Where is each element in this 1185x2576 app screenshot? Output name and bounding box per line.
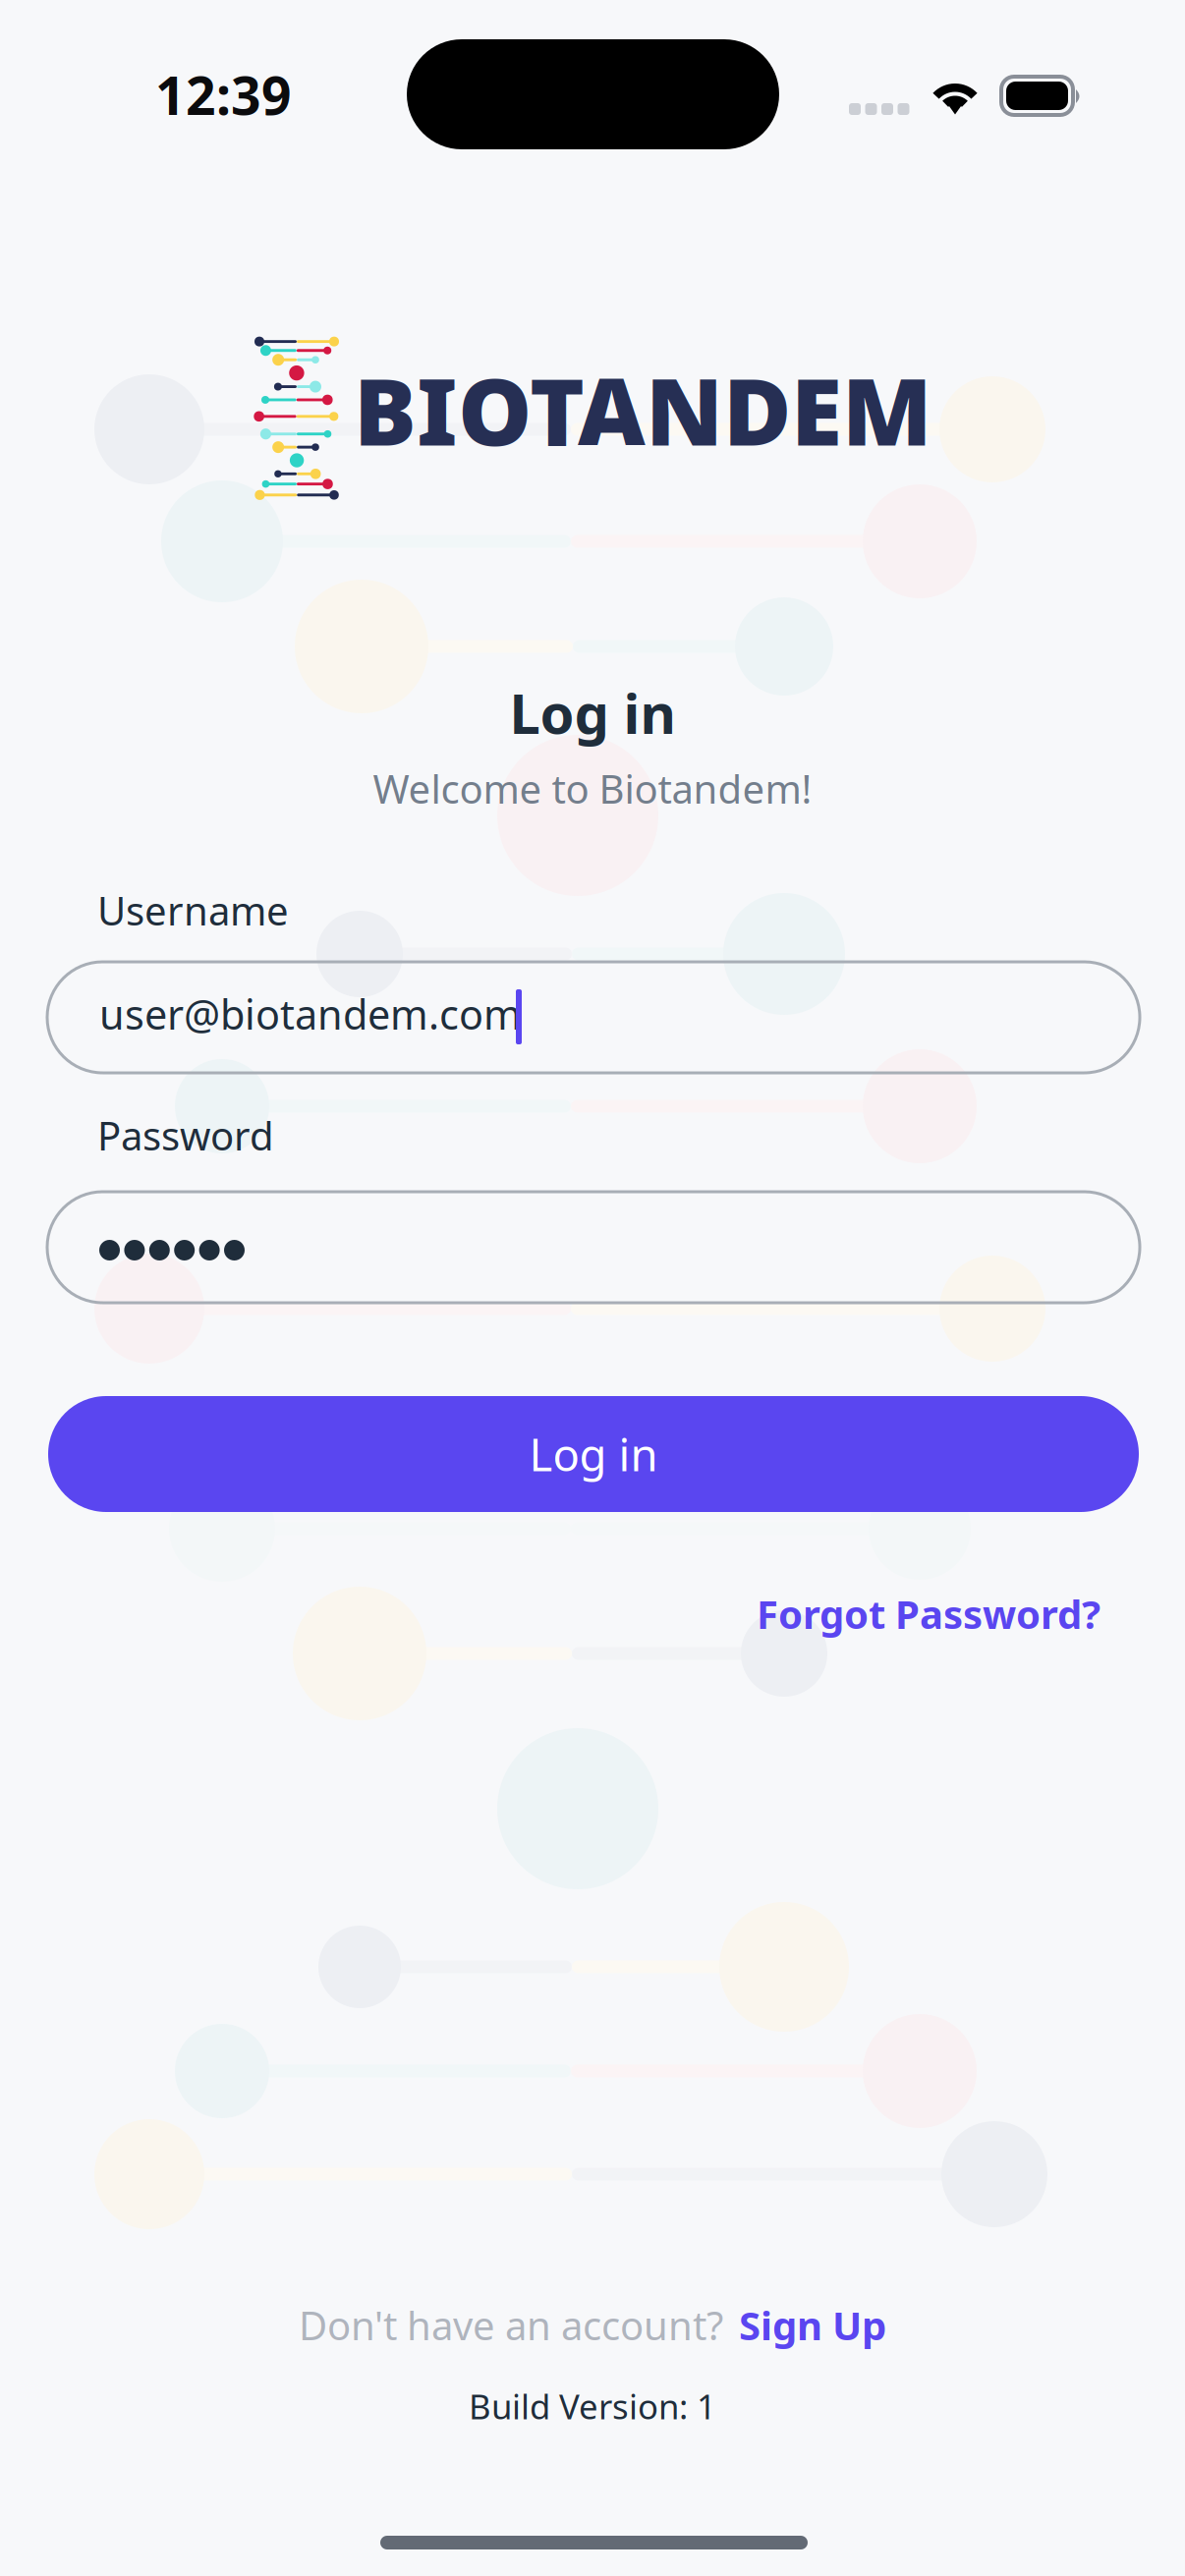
button[interactable]: Log in — [48, 1396, 1139, 1512]
staticText: Don't have an account? — [299, 2299, 723, 2351]
staticText: Log in — [529, 1424, 658, 1484]
staticText: Username — [97, 884, 289, 936]
button[interactable]: Sign Up — [723, 2299, 886, 2351]
staticText: Password — [97, 1109, 274, 1161]
staticText: Welcome to Biotandem! — [373, 762, 812, 815]
button[interactable]: Forgot Password? — [757, 1588, 1100, 1640]
button[interactable]: Username field, user@biotandem.com — [47, 962, 1140, 1073]
staticText: Build Version: 1 — [469, 2383, 716, 2429]
staticText: Log in — [509, 676, 676, 749]
staticText: user@biotandem.com — [99, 987, 522, 1041]
button[interactable]: Password field — [47, 1192, 1140, 1303]
staticText: 12:39 — [155, 60, 292, 129]
staticText: BIOTANDEM — [354, 348, 932, 471]
staticText: Sign Up — [739, 2299, 886, 2351]
staticText: Forgot Password? — [757, 1588, 1100, 1640]
